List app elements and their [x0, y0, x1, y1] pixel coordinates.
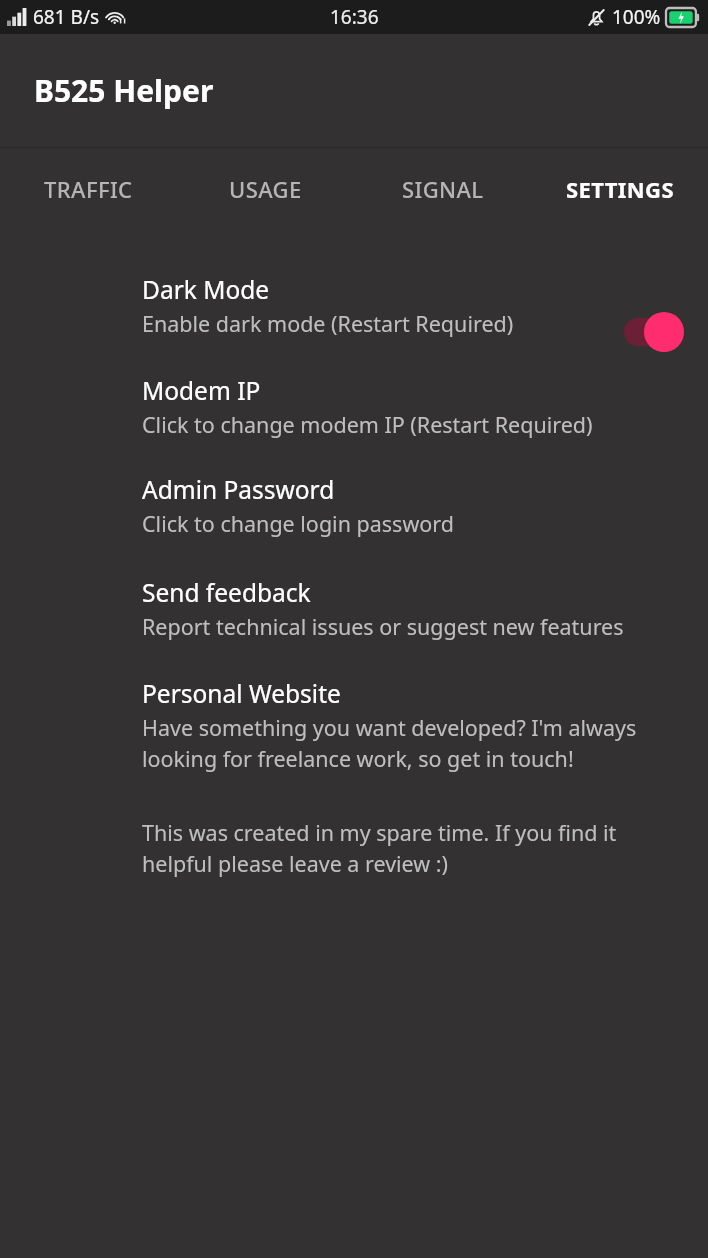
staticText: 100% — [612, 4, 661, 30]
staticText: Admin Password — [142, 473, 335, 506]
staticText: 681 B/s — [33, 4, 100, 30]
staticText: Dark Mode — [142, 273, 270, 306]
button[interactable]: USAGE — [177, 148, 354, 241]
staticText: 16:36 — [330, 4, 379, 30]
button[interactable]: TRAFFIC — [0, 148, 177, 241]
staticText: SETTINGS — [566, 174, 674, 204]
staticText: Modem IP — [142, 374, 261, 407]
staticText: Click to change login password — [142, 509, 454, 538]
button[interactable]: Personal Website — [0, 677, 708, 774]
staticText: TRAFFIC — [44, 174, 133, 204]
button[interactable]: Send feedback — [0, 576, 708, 641]
staticText: USAGE — [229, 174, 302, 204]
staticText: Click to change modem IP (Restart Requir… — [142, 410, 593, 439]
staticText: Enable dark mode (Restart Required) — [142, 309, 514, 338]
button[interactable]: Admin Password — [0, 473, 708, 538]
staticText: Have something you want developed? I'm a… — [142, 713, 684, 774]
staticText: Personal Website — [142, 677, 341, 710]
staticText: Report technical issues or suggest new f… — [142, 612, 624, 641]
staticText: This was created in my spare time. If yo… — [142, 818, 666, 879]
button[interactable]: SIGNAL — [354, 148, 531, 241]
button[interactable]: Modem IP — [0, 374, 708, 439]
staticText: SIGNAL — [402, 174, 484, 204]
button[interactable]: Dark Mode — [0, 273, 708, 338]
staticText: B525 Helper — [34, 70, 214, 111]
button[interactable]: SETTINGS — [531, 148, 708, 241]
button[interactable]: Toggle dark mode — [622, 311, 684, 353]
staticText: Send feedback — [142, 576, 311, 609]
